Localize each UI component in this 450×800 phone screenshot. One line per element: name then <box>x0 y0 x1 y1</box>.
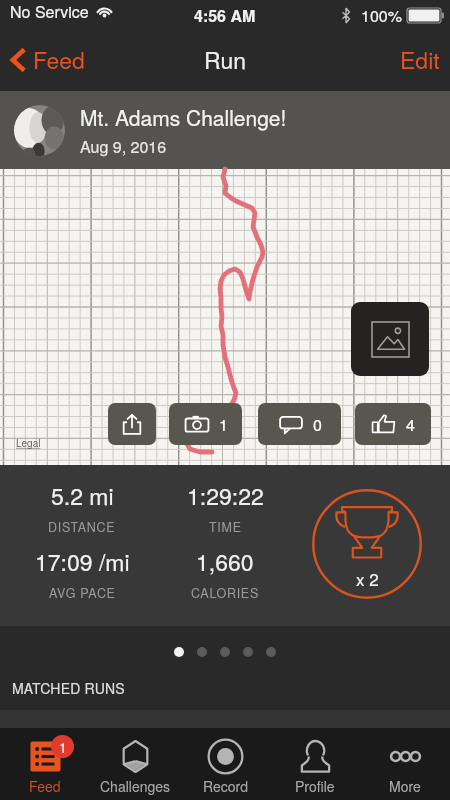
button[interactable]: Feed <box>0 37 93 82</box>
staticText: 1 <box>219 413 228 436</box>
staticText: CALORIES <box>191 584 259 602</box>
staticText: x 2 <box>356 566 379 590</box>
staticText: Edit <box>400 43 440 76</box>
staticText: Profile <box>295 776 335 796</box>
staticText: TIME <box>209 518 242 536</box>
button[interactable]: Trophies <box>312 489 422 599</box>
staticText: Aug 9, 2016 <box>80 135 167 158</box>
button[interactable]: Comments <box>258 403 341 445</box>
staticText: DISTANCE <box>48 518 116 536</box>
button[interactable]: Profile <box>270 728 360 800</box>
staticText: Mt. Adams Challenge! <box>80 102 287 132</box>
button[interactable]: Share <box>108 403 156 445</box>
staticText: 5.2 mi <box>51 479 114 512</box>
staticText: Record <box>203 776 248 796</box>
staticText: Feed <box>29 776 61 796</box>
staticText: 100% <box>361 4 402 27</box>
staticText: AVG PACE <box>49 584 116 602</box>
button[interactable]: Photo <box>351 302 429 376</box>
staticText: Feed <box>33 43 85 76</box>
staticText: More <box>389 776 421 796</box>
staticText: 4:56 AM <box>194 4 256 27</box>
button[interactable]: Record <box>180 728 270 800</box>
staticText: 1:29:22 <box>187 479 264 512</box>
button[interactable]: Mt. Adams Challenge! <box>0 91 450 169</box>
staticText: Run <box>204 43 246 76</box>
staticText: 1 <box>59 737 67 757</box>
staticText: 17:09 /mi <box>35 545 130 578</box>
staticText: 4 <box>406 413 415 436</box>
button[interactable]: 1 <box>0 728 90 800</box>
staticText: MATCHED RUNS <box>12 678 125 698</box>
staticText: Legal <box>16 436 41 450</box>
staticText: 1,660 <box>196 545 254 578</box>
staticText: Challenges <box>100 776 171 796</box>
button[interactable]: Photos <box>169 403 242 445</box>
button[interactable]: MATCHED RUNS <box>0 670 450 710</box>
staticText: 0 <box>313 413 322 436</box>
button[interactable]: Challenges <box>90 728 180 800</box>
button[interactable]: Likes <box>355 403 431 445</box>
staticText: No Service <box>10 0 89 23</box>
button[interactable]: Edit <box>390 37 450 82</box>
button[interactable]: More <box>360 728 450 800</box>
